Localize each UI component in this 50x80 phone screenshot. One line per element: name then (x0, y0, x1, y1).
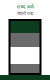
staticText: शब्द अर्थ (16, 3, 33, 10)
staticText: नेपाली शब्द (17, 11, 33, 16)
